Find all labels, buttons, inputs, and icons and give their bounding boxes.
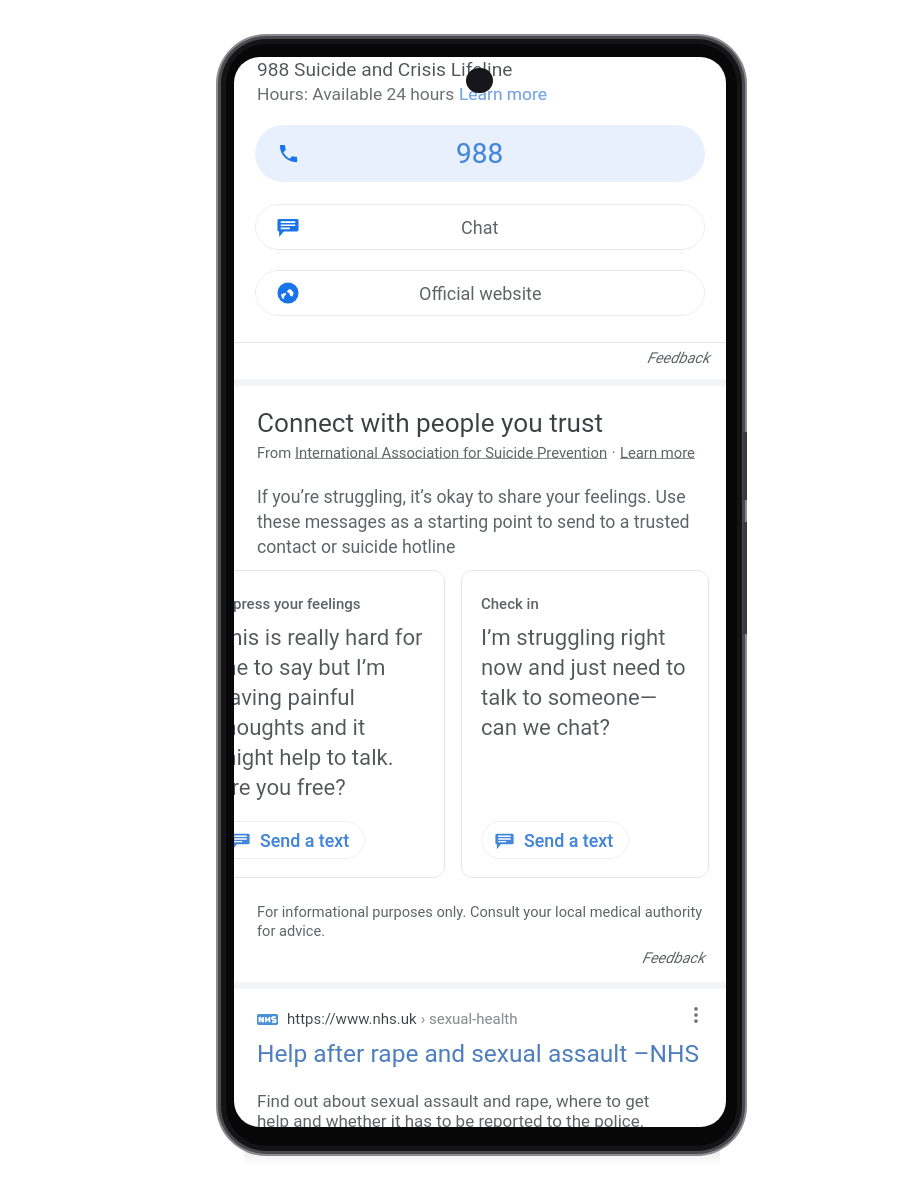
staticText: Hours: Available 24 hours: [257, 84, 459, 104]
staticText: 988: [456, 137, 504, 170]
button[interactable]: More options: [685, 1004, 707, 1026]
button[interactable]: 988: [255, 125, 705, 182]
staticText: https://www.nhs.uk: [287, 1010, 417, 1028]
button[interactable]: Check in: [461, 570, 709, 878]
button[interactable]: International Association for Suicide Pr…: [295, 444, 608, 461]
staticText: Send a text: [524, 830, 614, 851]
button[interactable]: Send a text: [481, 821, 629, 859]
button[interactable]: Learn more: [459, 84, 547, 104]
staticText: From: [257, 444, 295, 461]
staticText: If you’re struggling, it’s okay to share…: [257, 487, 703, 558]
staticText: Connect with people you trust: [257, 408, 604, 439]
staticText: 988 Suicide and Crisis Lifeline: [257, 58, 513, 81]
button[interactable]: Chat: [255, 204, 705, 250]
staticText: Express your feelings: [234, 595, 361, 613]
staticText: ·: [608, 444, 620, 461]
button[interactable]: Send a text: [234, 821, 365, 859]
staticText: For informational purposes only. Consult…: [257, 903, 703, 940]
button[interactable]: Feedback: [647, 349, 710, 367]
staticText: › sexual-health: [417, 1010, 518, 1028]
staticText: This is really hard for me to say but I’…: [234, 624, 423, 800]
button[interactable]: Learn more: [620, 444, 695, 461]
button[interactable]: Express your feelings: [234, 570, 445, 878]
staticText: Chat: [461, 217, 499, 238]
staticText: Official website: [419, 283, 542, 304]
button[interactable]: Feedback: [642, 949, 705, 967]
staticText: Find out about sexual assault and rape, …: [257, 1091, 650, 1127]
staticText: Send a text: [260, 830, 350, 851]
button[interactable]: Help after rape and sexual assault –NHS: [257, 1039, 699, 1068]
staticText: I’m struggling right now and just need t…: [481, 624, 686, 740]
button[interactable]: Official website: [255, 270, 705, 316]
staticText: Check in: [481, 595, 539, 613]
